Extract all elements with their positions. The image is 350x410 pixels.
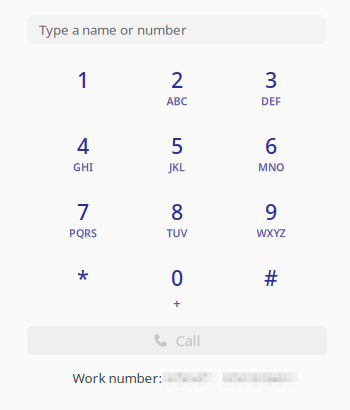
staticText: 2 <box>171 66 183 94</box>
staticText: 8 <box>171 198 183 226</box>
staticText: Work number: <box>72 369 162 387</box>
button[interactable]: Type a name or number <box>27 15 327 44</box>
staticText: 7 <box>77 198 89 226</box>
button[interactable]: 9 <box>224 194 318 260</box>
button[interactable]: 6 <box>224 128 318 194</box>
staticText: + <box>173 294 181 312</box>
staticText: TUV <box>166 226 187 240</box>
staticText: 5 <box>171 132 183 160</box>
staticText: 6 <box>265 132 277 160</box>
button[interactable]: 1 <box>36 62 130 128</box>
staticText: ABC <box>166 94 187 108</box>
button[interactable]: 7 <box>36 194 130 260</box>
button[interactable]: 5 <box>130 128 224 194</box>
button[interactable]: 2 <box>130 62 224 128</box>
staticText: 0 <box>171 264 183 292</box>
button[interactable]: * <box>36 260 130 326</box>
staticText: * <box>77 264 89 292</box>
button[interactable]: 3 <box>224 62 318 128</box>
staticText: DEF <box>261 94 281 108</box>
staticText: PQRS <box>69 226 97 240</box>
staticText: GHI <box>73 160 93 174</box>
staticText: 9 <box>265 198 277 226</box>
button[interactable]: Call <box>27 326 327 355</box>
staticText: WXYZ <box>256 226 285 240</box>
staticText: 3 <box>265 66 277 94</box>
button[interactable]: # <box>224 260 318 326</box>
staticText: MNO <box>258 160 284 174</box>
staticText: 1 <box>77 66 89 94</box>
button[interactable]: 0 <box>130 260 224 326</box>
button[interactable]: 8 <box>130 194 224 260</box>
staticText: 4 <box>77 132 89 160</box>
staticText: # <box>264 264 278 292</box>
staticText: Type a name or number <box>39 21 187 38</box>
staticText: JKL <box>169 160 185 174</box>
staticText: Call <box>175 331 200 350</box>
button[interactable]: 4 <box>36 128 130 194</box>
